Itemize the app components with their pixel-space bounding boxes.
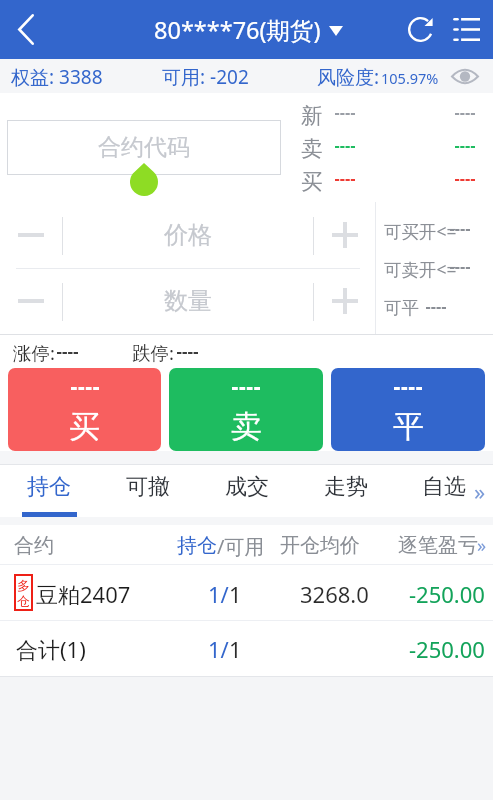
button[interactable]: Toggle balance visibility — [448, 59, 481, 93]
staticText: 可平 — [384, 297, 419, 319]
staticText: 可用: -202 — [162, 64, 249, 90]
staticText: 豆粕2407 — [36, 579, 131, 609]
staticText: -250.00 — [409, 579, 485, 609]
staticText: 风险度: — [317, 64, 380, 90]
button[interactable]: 买 — [8, 368, 161, 451]
staticText: 1 — [229, 634, 242, 664]
button[interactable]: 自选 — [400, 465, 488, 509]
staticText: 80****76(期货) — [154, 14, 321, 46]
staticText: 价格 — [164, 220, 212, 250]
staticText: 自选 — [422, 473, 466, 501]
button[interactable]: 成交 — [203, 465, 291, 509]
button[interactable]: 可撤 — [104, 465, 192, 509]
staticText: 权益: 3388 — [11, 64, 103, 90]
staticText: 持仓 — [27, 473, 71, 501]
staticText: 多 — [17, 577, 30, 593]
button[interactable]: Increase 数量 — [314, 268, 376, 334]
staticText: 卖 — [301, 135, 323, 162]
staticText: 合计(1) — [16, 634, 86, 664]
staticText: 可买开<= — [384, 219, 457, 243]
staticText: 1/ — [208, 634, 229, 664]
staticText: 合约代码 — [98, 133, 190, 162]
button[interactable]: Decrease 价格 — [0, 202, 62, 268]
staticText: 新 — [301, 102, 323, 129]
staticText: 105.97% — [381, 68, 439, 88]
staticText: 卖 — [231, 407, 262, 446]
button[interactable]: Increase 价格 — [314, 202, 376, 268]
staticText: 可卖开<= — [384, 257, 457, 281]
button[interactable]: 多 — [0, 565, 493, 620]
button[interactable]: 数量 — [63, 268, 313, 334]
button[interactable]: Back — [0, 0, 52, 59]
button[interactable]: 卖 — [169, 368, 323, 451]
staticText: 平 — [393, 407, 424, 446]
staticText: 买 — [301, 168, 323, 195]
staticText: 开仓均价 — [280, 533, 360, 558]
staticText: 3268.0 — [300, 579, 369, 609]
button[interactable]: Menu — [440, 0, 493, 59]
staticText: » — [477, 533, 487, 558]
button[interactable]: 持仓 — [5, 465, 93, 509]
staticText: 可撤 — [126, 473, 170, 501]
button[interactable]: 价格 — [63, 202, 313, 268]
staticText: 走势 — [324, 473, 368, 501]
button[interactable]: More tabs — [466, 465, 493, 517]
staticText: -250.00 — [409, 634, 485, 664]
staticText: 跌停: — [132, 340, 174, 365]
staticText: 仓 — [17, 593, 30, 609]
staticText: 涨停: — [13, 340, 55, 365]
staticText: 成交 — [225, 473, 269, 501]
staticText: 1/ — [208, 579, 229, 609]
staticText: 持仓 — [177, 533, 217, 558]
staticText: /可用 — [217, 533, 265, 560]
staticText: 合约 — [14, 533, 54, 558]
button[interactable]: 80****76(期货) — [154, 0, 343, 59]
button[interactable]: 走势 — [302, 465, 390, 509]
button[interactable]: Refresh — [394, 0, 446, 59]
button[interactable]: 合约代码 — [7, 120, 281, 175]
staticText: 1 — [229, 579, 242, 609]
button[interactable]: 平 — [331, 368, 485, 451]
staticText: » — [474, 476, 486, 506]
button[interactable]: Decrease 数量 — [0, 268, 62, 334]
staticText: 买 — [69, 407, 100, 446]
staticText: 数量 — [164, 286, 212, 316]
staticText: 逐笔盈亏 — [398, 533, 478, 558]
